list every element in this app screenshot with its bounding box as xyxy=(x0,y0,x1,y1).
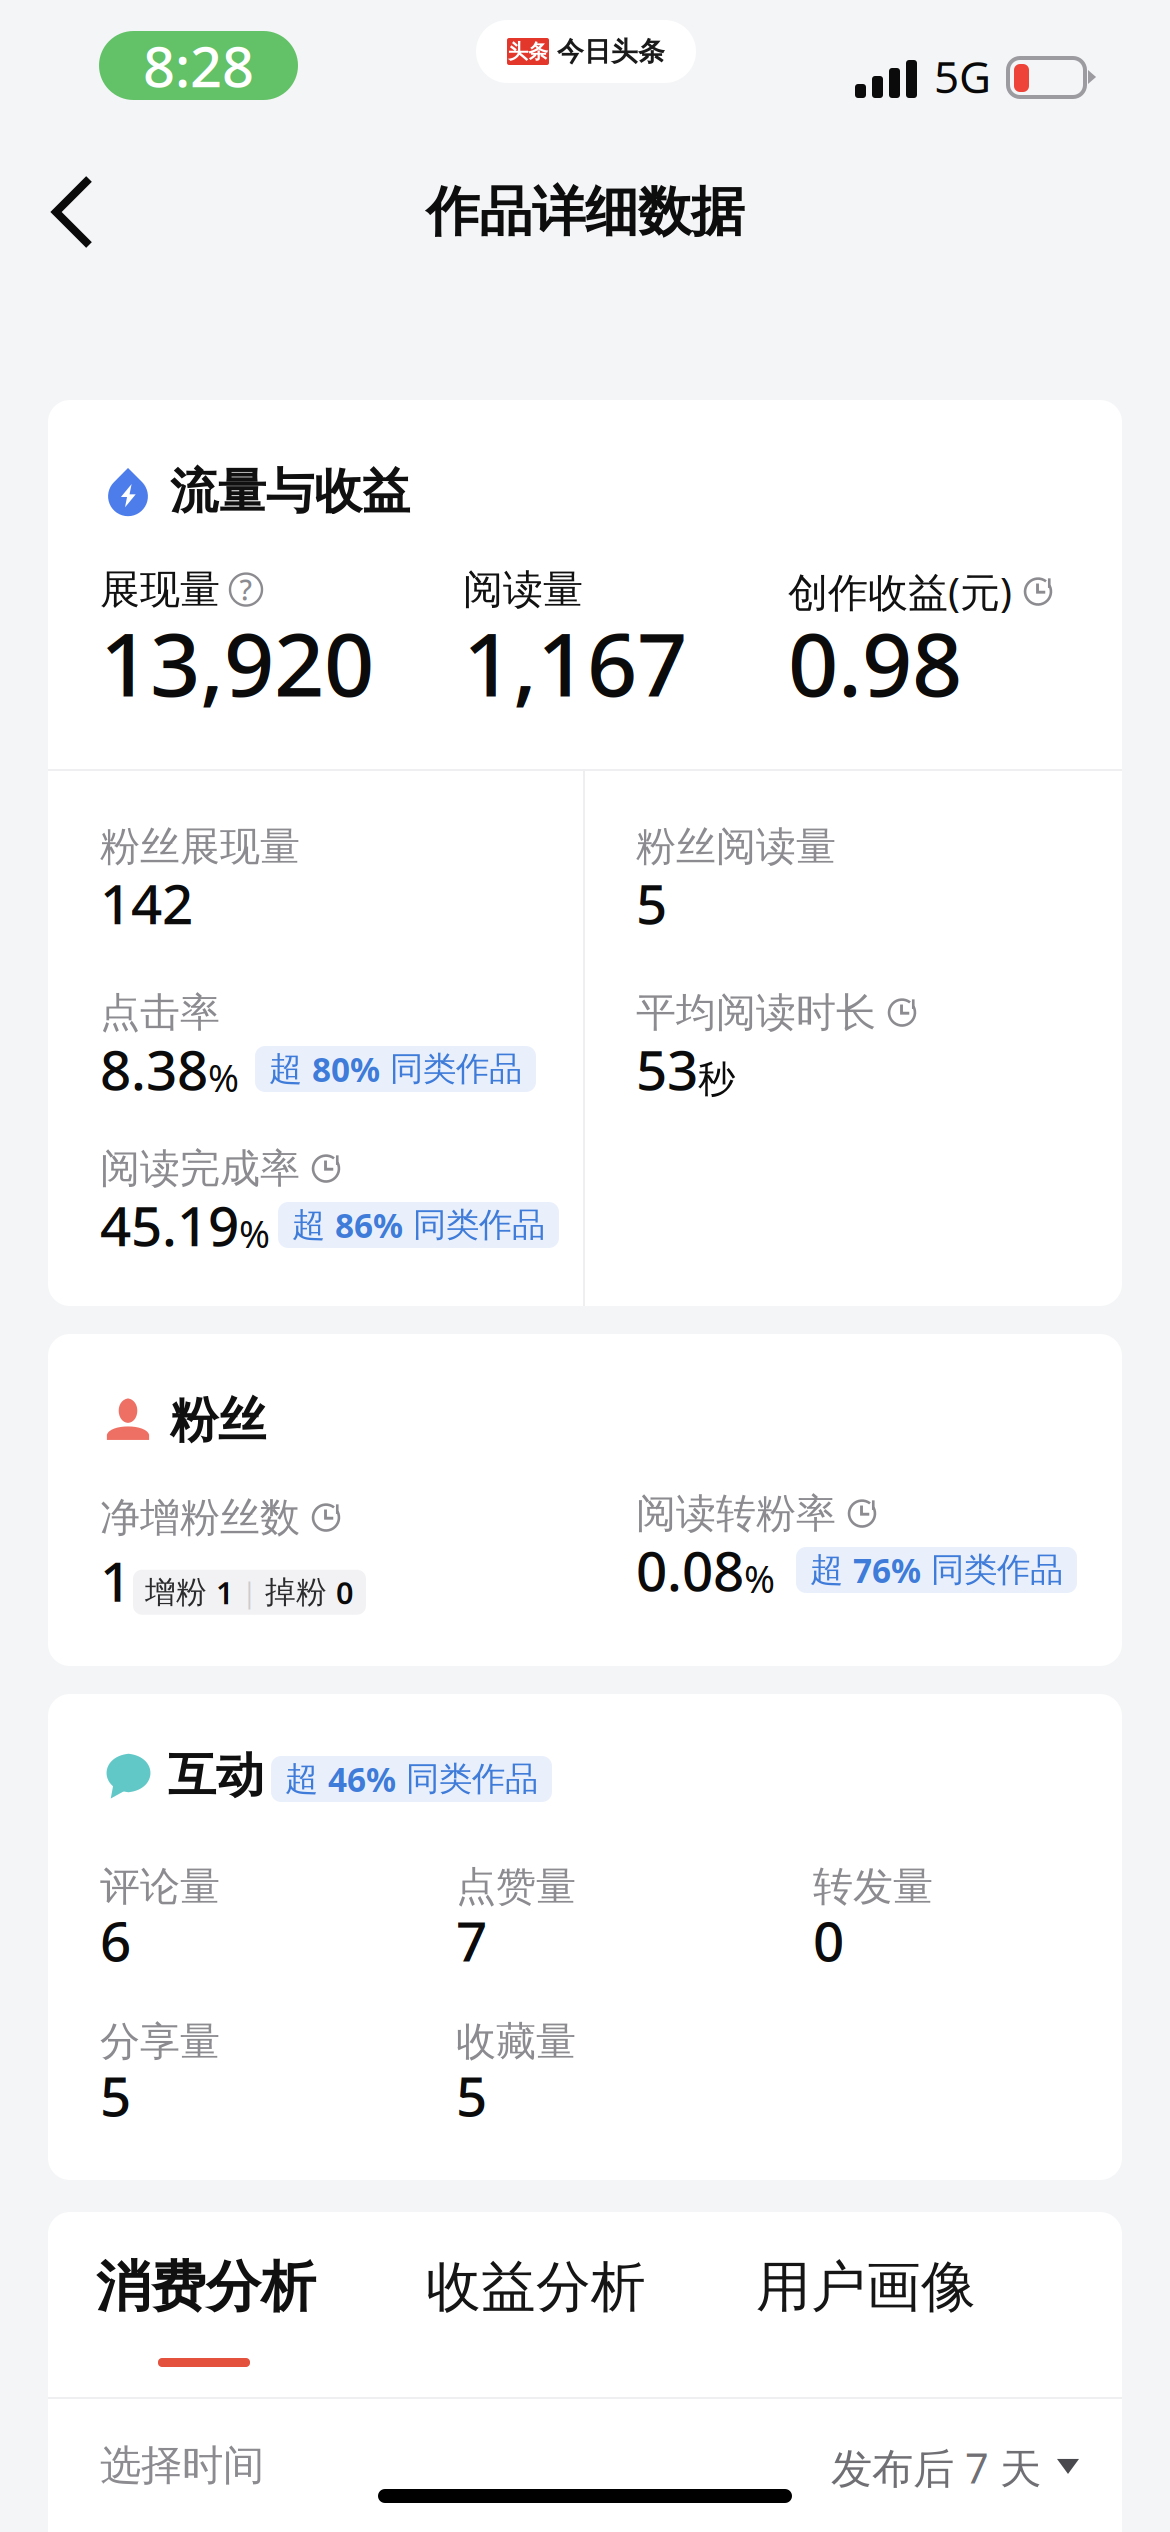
staticText: 80% xyxy=(312,1047,380,1091)
staticText: 8:28 xyxy=(143,28,254,103)
staticText: 45.19 xyxy=(100,1189,239,1261)
staticText: 46% xyxy=(328,1757,396,1801)
staticText: 超 xyxy=(810,1549,853,1590)
staticText: 同类作品 xyxy=(396,1758,538,1799)
button[interactable]: 指标说明 xyxy=(230,574,262,606)
staticText: 5 xyxy=(100,2059,131,2132)
staticText: 分享量 xyxy=(100,2017,220,2066)
staticText: 评论量 xyxy=(100,1862,220,1911)
staticText: 粉丝展现量 xyxy=(100,822,300,871)
staticText: 8.38 xyxy=(100,1033,208,1105)
staticText: 0.98 xyxy=(788,604,962,721)
staticText: 超 xyxy=(285,1758,328,1799)
staticText: % xyxy=(208,1053,239,1102)
staticText: 流量与收益 xyxy=(170,462,410,521)
staticText: 5G xyxy=(934,47,991,105)
button[interactable]: 发布后 7 天 xyxy=(831,2440,1079,2495)
staticText: 阅读完成率 xyxy=(100,1144,300,1193)
staticText: 13,920 xyxy=(100,604,374,721)
button[interactable]: 历史数据 xyxy=(886,997,918,1029)
staticText: 收藏量 xyxy=(456,2017,576,2066)
button[interactable]: 历史数据 xyxy=(1022,576,1054,608)
staticText: 发布后 7 天 xyxy=(831,2440,1041,2495)
staticText: 粉丝 xyxy=(170,1391,266,1450)
staticText: 秒 xyxy=(698,1056,735,1102)
staticText: 选择时间 xyxy=(100,2440,264,2491)
staticText: 创作收益(元) xyxy=(788,565,1012,618)
staticText: 同类作品 xyxy=(921,1549,1063,1590)
staticText: 互动 xyxy=(168,1746,264,1805)
staticText: 86% xyxy=(335,1203,403,1247)
staticText: 0.08 xyxy=(636,1534,744,1606)
staticText: 增粉 xyxy=(145,1573,216,1611)
button[interactable]: 收益分析 xyxy=(426,2256,656,2318)
staticText: 点赞量 xyxy=(456,1862,576,1911)
staticText: 用户画像 xyxy=(756,2253,976,2320)
staticText: 平均阅读时长 xyxy=(636,988,876,1037)
staticText: 同类作品 xyxy=(380,1048,522,1089)
staticText: 142 xyxy=(100,867,193,939)
button[interactable]: 用户画像 xyxy=(756,2256,986,2318)
staticText: | xyxy=(242,1574,257,1610)
staticText: 作品详细数据 xyxy=(426,179,744,245)
staticText: 净增粉丝数 xyxy=(100,1493,300,1542)
staticText: 今日头条 xyxy=(557,35,665,68)
staticText: 1 xyxy=(100,1544,131,1617)
button[interactable]: 历史数据 xyxy=(310,1153,342,1185)
staticText: 收益分析 xyxy=(426,2253,646,2320)
staticText: 消费分析 xyxy=(96,2253,316,2320)
button[interactable]: Back xyxy=(47,153,99,271)
staticText: 粉丝阅读量 xyxy=(636,822,836,871)
staticText: % xyxy=(239,1209,270,1258)
staticText: 53 xyxy=(636,1033,698,1105)
staticText: 超 xyxy=(292,1204,335,1245)
staticText: 阅读转粉率 xyxy=(636,1489,836,1538)
staticText: 5 xyxy=(636,867,667,939)
button[interactable]: 消费分析 xyxy=(96,2256,326,2386)
staticText: 6 xyxy=(100,1904,131,1977)
staticText: 0 xyxy=(813,1904,844,1977)
staticText: 展现量 xyxy=(100,565,220,614)
staticText: 同类作品 xyxy=(403,1204,545,1245)
staticText: 掉粉 xyxy=(265,1573,336,1611)
staticText: 头条 xyxy=(508,39,548,64)
staticText: 转发量 xyxy=(813,1862,933,1911)
staticText: % xyxy=(744,1554,775,1603)
staticText: 阅读量 xyxy=(463,565,583,614)
staticText: 超 xyxy=(269,1048,312,1089)
staticText: 5 xyxy=(456,2059,487,2132)
staticText: 1,167 xyxy=(463,604,687,721)
staticText: ? xyxy=(239,571,252,608)
staticText: 76% xyxy=(853,1548,921,1592)
staticText: 1 xyxy=(216,1572,234,1613)
button[interactable]: 历史数据 xyxy=(310,1502,342,1534)
button[interactable]: 历史数据 xyxy=(846,1498,878,1530)
staticText: 点击率 xyxy=(100,988,220,1037)
staticText: 0 xyxy=(336,1572,354,1613)
staticText: 7 xyxy=(456,1904,487,1977)
